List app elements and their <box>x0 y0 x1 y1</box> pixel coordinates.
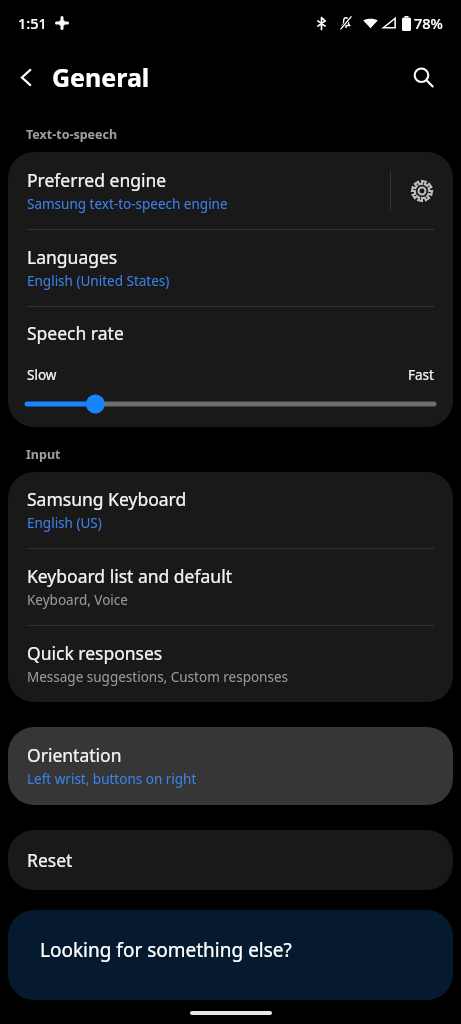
staticText: English (United States) <box>27 272 170 290</box>
staticText: Preferred engine <box>27 168 167 192</box>
staticText: Keyboard, Voice <box>27 591 128 609</box>
staticText: Text-to-speech <box>26 126 118 143</box>
staticText: Quick responses <box>27 641 163 665</box>
button[interactable]: Looking for something else? <box>8 910 453 1000</box>
button[interactable]: Back <box>0 51 52 103</box>
staticText: Fast <box>408 366 434 384</box>
button[interactable]: Quick responses <box>8 626 453 702</box>
button[interactable]: Preferred engine settings <box>391 160 453 222</box>
button[interactable]: Preferred engine <box>8 152 453 229</box>
staticText: Looking for something else? <box>40 937 292 963</box>
staticText: Samsung Keyboard <box>27 487 187 511</box>
staticText: Reset <box>27 848 73 872</box>
staticText: Slow <box>27 366 57 384</box>
staticText: 78% <box>414 13 443 33</box>
staticText: 1:51 <box>18 13 47 33</box>
button[interactable]: Orientation <box>8 727 453 805</box>
button[interactable]: Keyboard list and default <box>8 549 453 625</box>
staticText: Input <box>26 446 61 463</box>
button[interactable]: Reset <box>8 830 453 890</box>
staticText: Samsung text-to-speech engine <box>27 195 228 213</box>
staticText: Message suggestions, Custom responses <box>27 668 289 686</box>
staticText: English (US) <box>27 514 102 532</box>
button[interactable] <box>27 393 434 415</box>
staticText: Keyboard list and default <box>27 564 232 588</box>
staticText: Orientation <box>27 743 122 767</box>
staticText: General <box>52 60 150 94</box>
button[interactable]: Samsung Keyboard <box>8 472 453 548</box>
button[interactable]: Languages <box>8 230 453 306</box>
button[interactable]: Search <box>399 53 447 101</box>
staticText: Left wrist, buttons on right <box>27 770 197 788</box>
staticText: Speech rate <box>27 321 124 345</box>
staticText: Languages <box>27 245 118 269</box>
